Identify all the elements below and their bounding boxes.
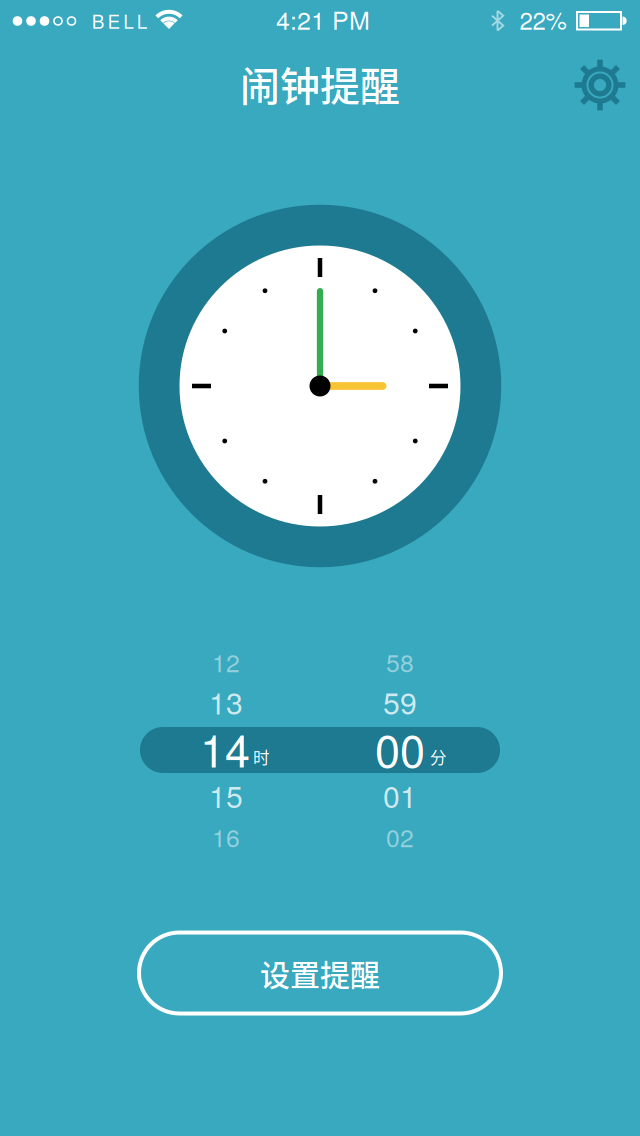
button[interactable]: 设置提醒 — [137, 930, 503, 1015]
staticText: B — [92, 7, 105, 34]
staticText: 4:21 PM — [276, 1, 370, 37]
staticText: 设置提醒 — [260, 951, 380, 995]
staticText: 闹钟提醒 — [240, 54, 400, 112]
staticText: L — [137, 7, 148, 34]
staticText: 22% — [519, 2, 566, 37]
button[interactable] — [570, 55, 630, 115]
staticText: 02 — [386, 819, 414, 854]
staticText: L — [123, 7, 134, 34]
staticText: 13 — [209, 680, 243, 723]
staticText: 59 — [383, 680, 417, 723]
staticText: 01 — [383, 773, 417, 817]
staticText: 15 — [209, 773, 243, 817]
staticText: 分 — [430, 745, 447, 769]
staticText: 00 — [375, 716, 425, 780]
staticText: 58 — [386, 644, 414, 679]
staticText: E — [107, 7, 120, 34]
staticText: 12 — [212, 644, 240, 679]
button[interactable]: 14 — [140, 727, 500, 773]
staticText: 时 — [253, 745, 270, 769]
staticText: 16 — [212, 819, 240, 854]
staticText: 14 — [200, 716, 250, 780]
